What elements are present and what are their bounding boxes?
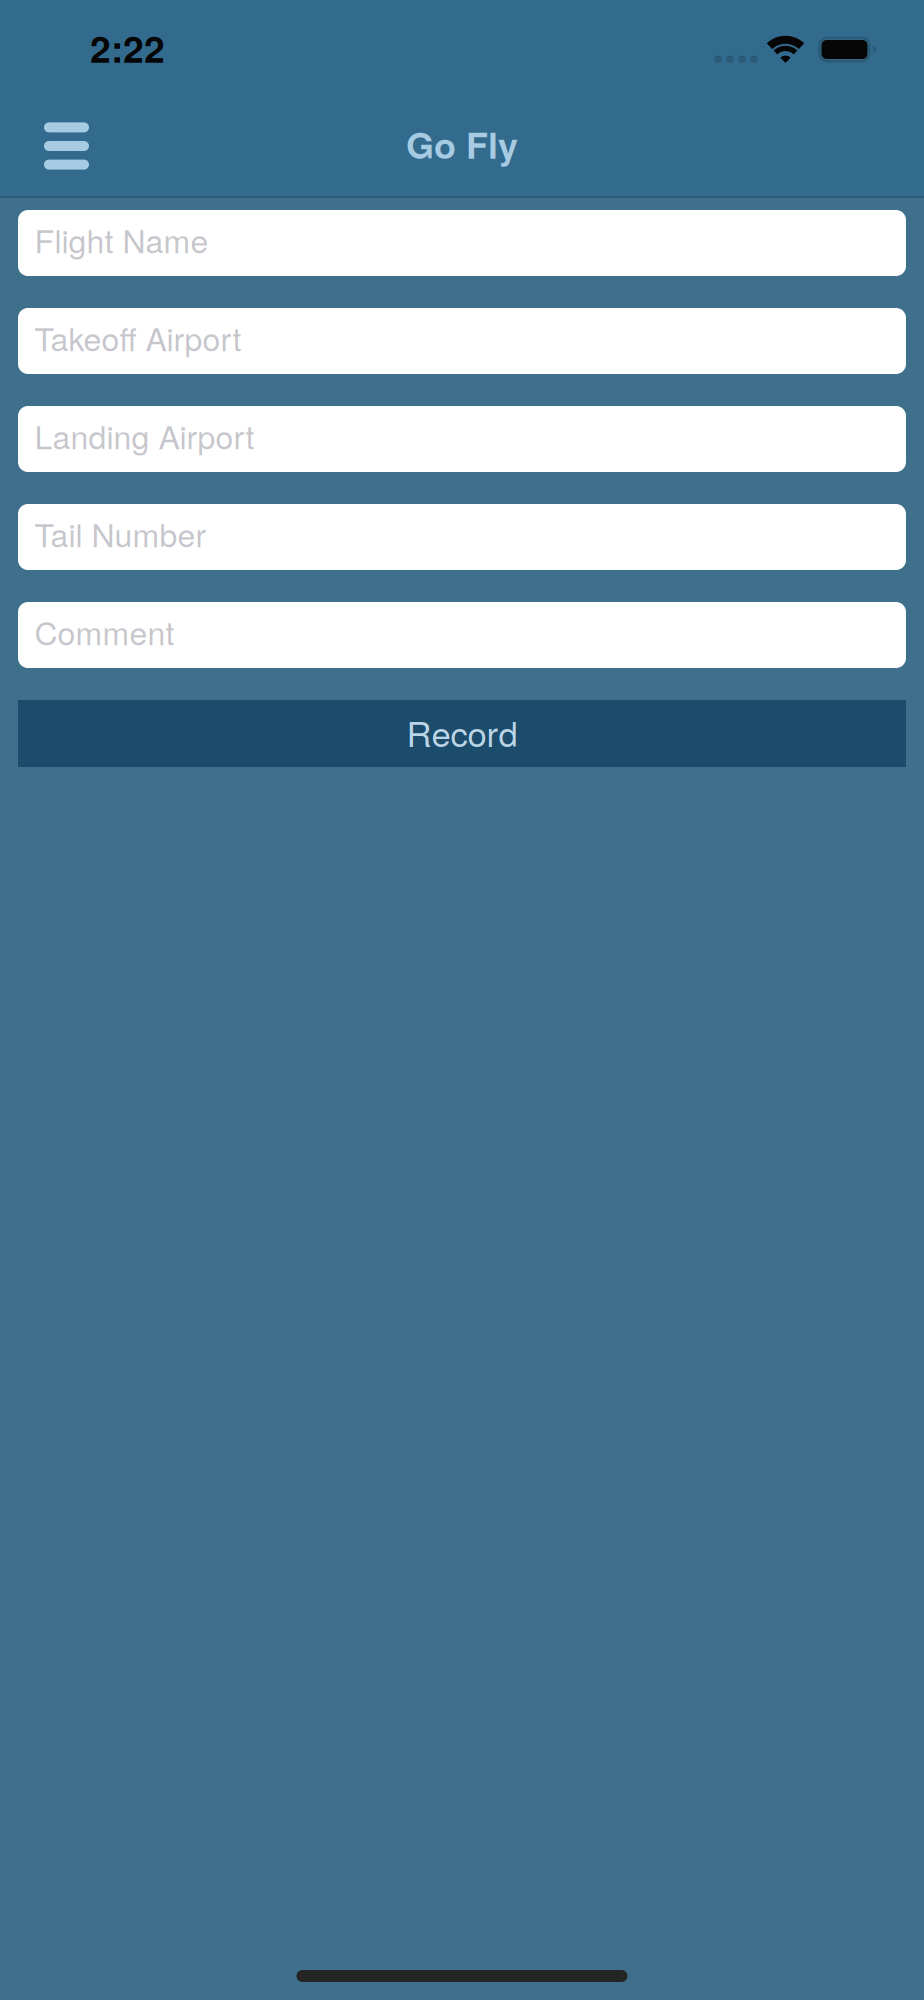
staticText: Comment xyxy=(34,609,174,654)
staticText: 2:22 xyxy=(90,21,165,74)
staticText: Landing Airport xyxy=(34,413,254,458)
button[interactable]: Takeoff Airport xyxy=(18,308,906,374)
button[interactable]: Menu xyxy=(0,96,89,196)
button[interactable]: Flight Name xyxy=(18,210,906,276)
button[interactable]: Tail Number xyxy=(18,504,906,570)
staticText: Go Fly xyxy=(406,118,518,170)
staticText: Record xyxy=(406,707,517,757)
staticText: Takeoff Airport xyxy=(34,315,241,360)
staticText: Flight Name xyxy=(34,217,208,262)
staticText: Tail Number xyxy=(34,511,206,556)
button[interactable]: Landing Airport xyxy=(18,406,906,472)
button[interactable]: Comment xyxy=(18,602,906,668)
button[interactable]: Record xyxy=(18,700,906,767)
